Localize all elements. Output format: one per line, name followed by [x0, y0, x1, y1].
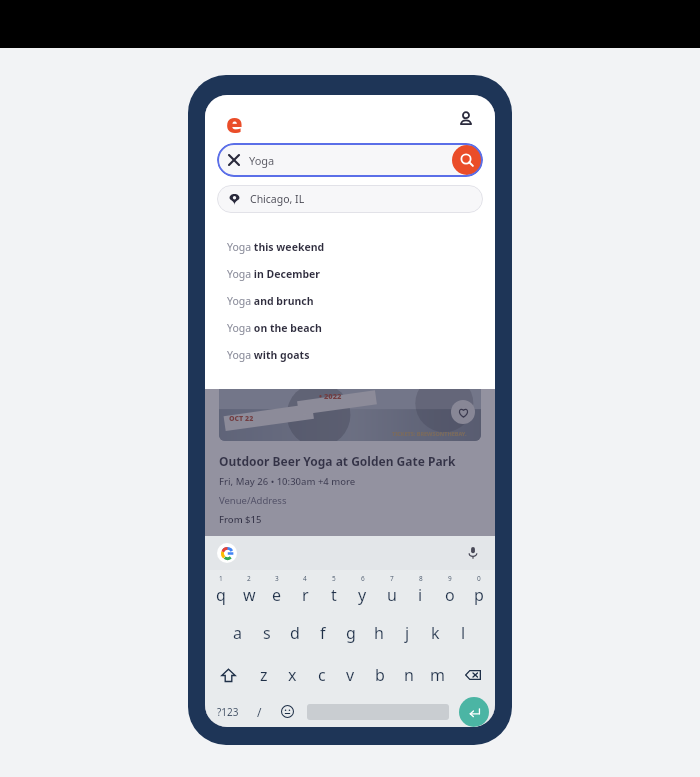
staticText: 6 — [361, 574, 365, 583]
button[interactable]: g — [337, 612, 365, 654]
button[interactable]: a — [223, 612, 252, 654]
staticText: 8 — [419, 574, 423, 583]
staticText: 9 — [448, 574, 452, 583]
button[interactable]: ?123 — [211, 696, 245, 727]
staticText: OCT 22 — [229, 414, 254, 424]
staticText: 7 — [390, 574, 394, 583]
button[interactable]: m — [423, 654, 452, 696]
staticText: j — [405, 622, 410, 644]
button[interactable]: 8 — [406, 570, 435, 612]
staticText: h — [374, 622, 384, 644]
staticText: e — [272, 584, 282, 606]
button[interactable]: d — [281, 612, 309, 654]
other: Clear — [229, 155, 239, 165]
staticText: TICKETS: BREWSONTHEBAY. — [392, 430, 467, 437]
button[interactable]: 0 — [464, 570, 493, 612]
button[interactable]: Chicago, IL — [217, 185, 483, 213]
button[interactable]: Yoga this weekend — [205, 233, 495, 260]
staticText: d — [290, 622, 300, 644]
staticText: Yoga and brunch — [227, 294, 314, 308]
staticText: 0 — [477, 574, 481, 583]
staticText: b — [375, 664, 385, 686]
button[interactable]: Yoga on the beach — [205, 314, 495, 341]
staticText: q — [216, 584, 226, 606]
button[interactable]: Voice input — [463, 543, 483, 563]
staticText: e — [226, 104, 243, 134]
button[interactable]: z — [249, 654, 278, 696]
staticText: p — [474, 584, 484, 606]
button[interactable]: 9 — [435, 570, 464, 612]
button[interactable]: b — [365, 654, 394, 696]
button[interactable]: 4 — [291, 570, 319, 612]
staticText: a — [233, 622, 242, 644]
button[interactable]: Eventbrite home — [219, 104, 249, 134]
staticText: Chicago, IL — [250, 192, 305, 206]
button[interactable]: Enter — [459, 697, 489, 727]
button[interactable]: 2 — [235, 570, 263, 612]
button[interactable]: 7 — [377, 570, 406, 612]
button[interactable]: j — [393, 612, 421, 654]
staticText: 4 — [303, 574, 307, 583]
button[interactable]: Search — [452, 145, 482, 175]
staticText: t — [331, 584, 337, 606]
button[interactable]: Account — [451, 104, 481, 134]
staticText: r — [302, 584, 309, 606]
button[interactable]: 3 — [263, 570, 291, 612]
staticText: w — [243, 584, 256, 606]
staticText: l — [461, 622, 466, 644]
staticText: Venue/Address — [219, 494, 287, 507]
staticText: 2 — [247, 574, 251, 583]
button[interactable]: h — [365, 612, 393, 654]
staticText: Yoga on the beach — [227, 321, 322, 335]
staticText: s — [263, 622, 271, 644]
button[interactable]: s — [252, 612, 281, 654]
button[interactable]: Yoga and brunch — [205, 287, 495, 314]
button[interactable]: Clear — [217, 143, 483, 177]
staticText: • 2022 — [319, 391, 342, 401]
staticText: / — [257, 704, 262, 720]
button[interactable]: v — [336, 654, 365, 696]
staticText: z — [260, 664, 268, 686]
staticText: Outdoor Beer Yoga at Golden Gate Park — [219, 453, 456, 469]
staticText: g — [346, 622, 356, 644]
button[interactable]: Shift — [207, 654, 249, 696]
staticText: m — [430, 664, 445, 686]
staticText: i — [418, 584, 423, 606]
staticText: c — [318, 664, 326, 686]
staticText: 5 — [332, 574, 336, 583]
staticText: From $15 — [219, 513, 262, 526]
button[interactable]: f — [309, 612, 337, 654]
button[interactable]: 5 — [319, 570, 348, 612]
staticText: Yoga — [249, 153, 275, 168]
button[interactable]: 1 — [207, 570, 235, 612]
button[interactable]: Google — [217, 543, 237, 563]
staticText: k — [431, 622, 440, 644]
staticText: o — [445, 584, 455, 606]
staticText: 3 — [275, 574, 279, 583]
staticText: u — [387, 584, 397, 606]
button[interactable]: Emoji — [273, 696, 301, 727]
button[interactable]: Backspace — [452, 654, 493, 696]
staticText: Yoga in December — [227, 267, 321, 281]
button[interactable]: Save event — [451, 400, 475, 424]
button[interactable]: x — [278, 654, 307, 696]
staticText: 1 — [219, 574, 223, 583]
staticText: Fri, May 26 • 10:30am +4 more — [219, 475, 356, 488]
staticText: Yoga with goats — [227, 348, 310, 362]
button[interactable]: Yoga in December — [205, 260, 495, 287]
staticText: ?123 — [217, 705, 239, 719]
staticText: Yoga this weekend — [227, 240, 325, 254]
staticText: y — [358, 584, 367, 606]
button[interactable]: k — [421, 612, 449, 654]
staticText: f — [320, 622, 326, 644]
button[interactable]: c — [307, 654, 336, 696]
button[interactable]: Yoga with goats — [205, 341, 495, 368]
staticText: n — [404, 664, 414, 686]
staticText: v — [346, 664, 355, 686]
button[interactable]: n — [394, 654, 423, 696]
button[interactable]: 6 — [348, 570, 377, 612]
button[interactable]: / — [245, 696, 273, 727]
button[interactable]: l — [449, 612, 477, 654]
staticText: x — [288, 664, 297, 686]
